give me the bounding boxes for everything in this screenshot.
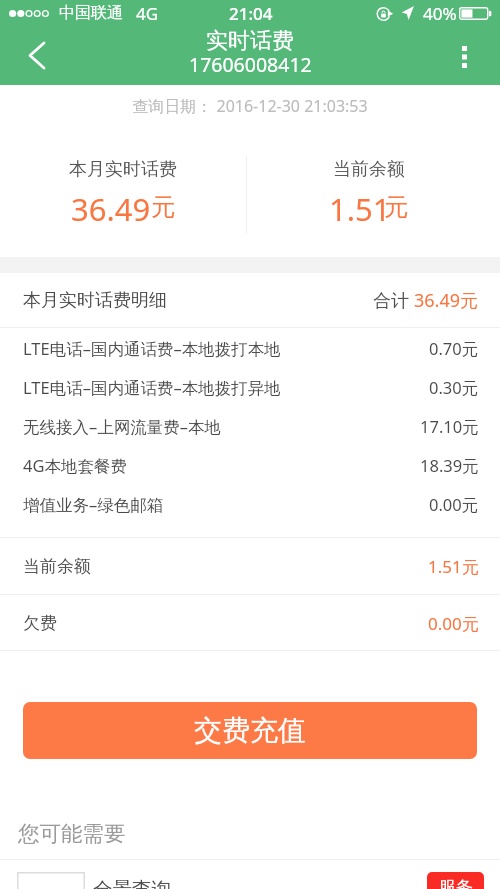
staticText: LTE电话–国内通话费–本地拨打本地: [23, 337, 281, 360]
staticText: 0.30元: [429, 376, 479, 399]
staticText: 17.10元: [420, 415, 479, 438]
staticText: 36.49元: [414, 288, 479, 313]
staticText: 增值业务–绿色邮箱: [23, 493, 164, 516]
staticText: 欠费: [23, 613, 57, 634]
staticText: 当前余额: [333, 158, 405, 181]
staticText: 全景查询: [93, 877, 171, 889]
staticText: 0.70元: [429, 337, 479, 360]
staticText: 元: [384, 192, 408, 222]
staticText: 17606008412: [189, 51, 312, 78]
staticText: 1.51: [329, 188, 391, 223]
button[interactable]: 本月实时话费明细: [0, 273, 500, 327]
staticText: 服务: [439, 877, 473, 889]
staticText: 0.00元: [429, 493, 479, 516]
staticText: 合计: [373, 288, 414, 313]
staticText: 交费充值: [194, 713, 306, 748]
staticText: 18.39元: [420, 454, 479, 477]
staticText: 本月实时话费: [69, 158, 177, 181]
button[interactable]: 无线接入–上网流量费–本地: [0, 407, 500, 446]
staticText: 您可能需要: [18, 820, 126, 847]
button[interactable]: 当前余额: [0, 538, 500, 594]
button[interactable]: 全景查询: [0, 860, 500, 889]
staticText: 中国联通: [59, 3, 123, 23]
staticText: 21:04: [229, 2, 273, 25]
staticText: 元: [151, 192, 175, 222]
button[interactable]: Back: [0, 26, 58, 85]
staticText: 当前余额: [23, 556, 91, 577]
staticText: 查询日期： 2016-12-30 21:03:53: [0, 95, 500, 117]
button[interactable]: 4G本地套餐费: [0, 446, 500, 485]
button[interactable]: 交费充值: [23, 702, 477, 759]
staticText: 4G本地套餐费: [23, 454, 127, 477]
staticText: 实时话费: [206, 27, 294, 55]
staticText: 0.00元: [428, 612, 479, 635]
button[interactable]: LTE电话–国内通话费–本地拨打异地: [0, 368, 500, 407]
staticText: 4G: [136, 2, 159, 25]
button[interactable]: LTE电话–国内通话费–本地拨打本地: [0, 329, 500, 368]
staticText: LTE电话–国内通话费–本地拨打异地: [23, 376, 281, 399]
button[interactable]: 增值业务–绿色邮箱: [0, 485, 500, 524]
staticText: 1.51元: [428, 555, 479, 578]
button[interactable]: More options: [448, 26, 500, 85]
button[interactable]: 欠费: [0, 595, 500, 651]
staticText: 无线接入–上网流量费–本地: [23, 415, 221, 438]
staticText: 40%: [423, 2, 457, 25]
staticText: 本月实时话费明细: [23, 289, 167, 312]
staticText: 36.49: [71, 188, 151, 223]
